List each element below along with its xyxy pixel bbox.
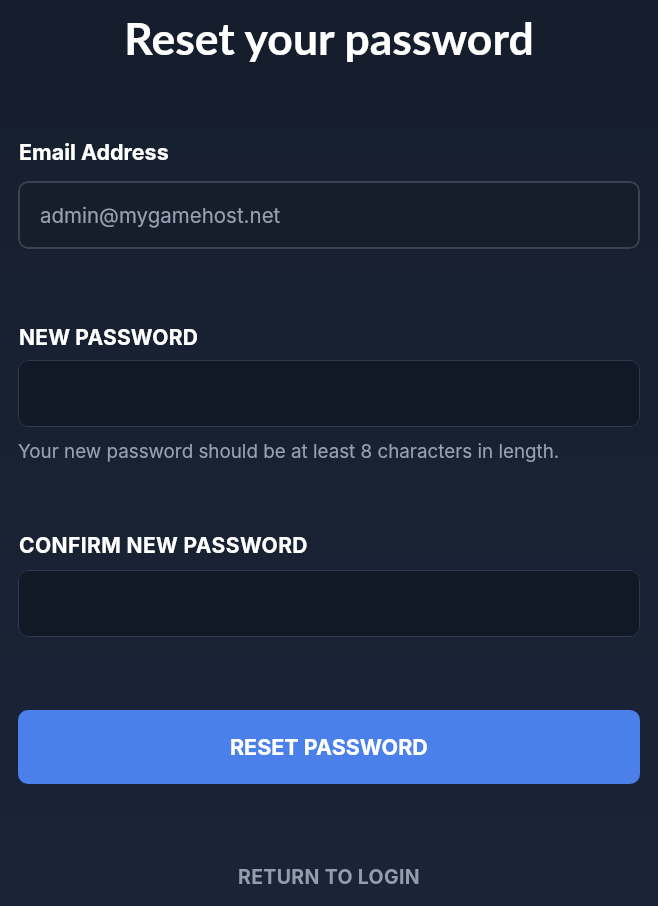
staticText: CONFIRM NEW PASSWORD [19,533,308,558]
staticText: admin@mygamehost.net [40,203,281,228]
staticText: Your new password should be at least 8 c… [18,440,560,463]
staticText: RETURN TO LOGIN [238,865,420,889]
button[interactable]: admin@mygamehost.net [18,181,640,249]
staticText: NEW PASSWORD [19,325,199,350]
button[interactable] [18,570,640,637]
button[interactable]: RESET PASSWORD [18,710,640,784]
button[interactable] [18,360,640,427]
staticText: Reset your password [0,11,658,64]
button[interactable]: RETURN TO LOGIN [0,865,658,889]
staticText: Email Address [19,139,169,165]
staticText: RESET PASSWORD [230,734,428,760]
